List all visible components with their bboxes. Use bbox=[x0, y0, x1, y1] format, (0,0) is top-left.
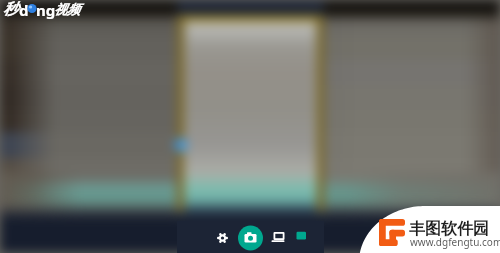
staticText: 视频 bbox=[54, 1, 80, 17]
staticText: www.dgfengtu.com bbox=[410, 235, 500, 249]
staticText: 丰图软件园 bbox=[409, 219, 489, 239]
staticText: d bbox=[19, 0, 29, 20]
staticText: 秒 bbox=[3, 0, 18, 19]
staticText: ng bbox=[36, 0, 56, 20]
